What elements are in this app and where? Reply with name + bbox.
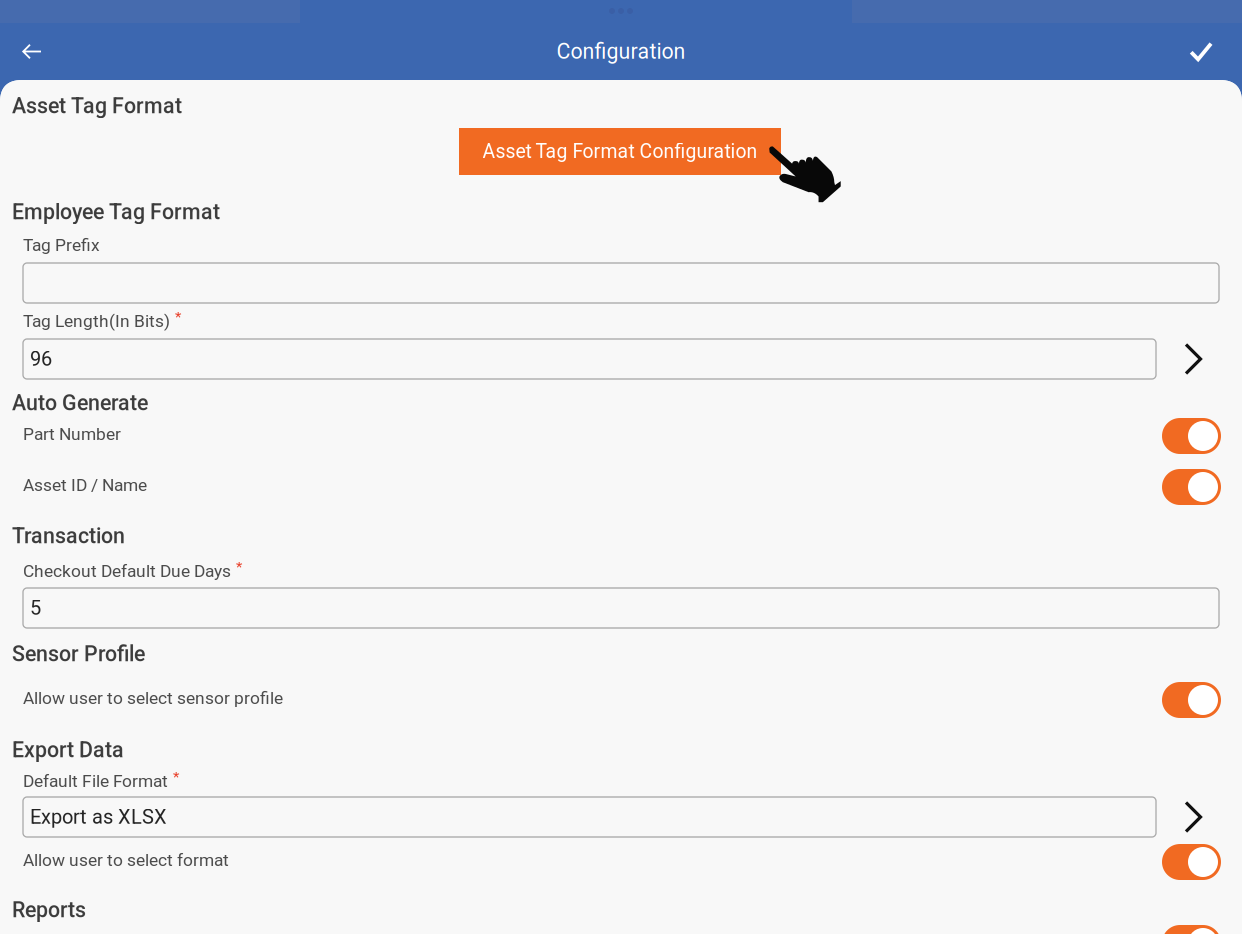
- staticText: Transaction: [12, 523, 125, 548]
- button[interactable]: Save: [1167, 23, 1242, 80]
- staticText: Auto Generate: [12, 390, 148, 415]
- staticText: 96: [30, 347, 52, 371]
- staticText: Export as XLSX: [30, 805, 167, 829]
- staticText: Asset Tag Format Configuration: [482, 140, 757, 163]
- staticText: Asset Tag Format: [12, 93, 182, 118]
- button[interactable]: Choose value: [1156, 339, 1212, 379]
- staticText: Asset ID / Name: [23, 475, 147, 495]
- staticText: Part Number: [23, 424, 121, 444]
- button[interactable]: Part Number: [0, 418, 1242, 454]
- staticText: Default File Format: [23, 771, 168, 791]
- staticText: Sensor Profile: [12, 641, 145, 666]
- button[interactable]: Back: [0, 23, 64, 80]
- button[interactable]: Allow user to select sensor profile: [0, 682, 1242, 718]
- staticText: Employee Tag Format: [12, 199, 220, 224]
- staticText: *: [236, 559, 242, 576]
- staticText: Export Data: [12, 737, 124, 762]
- staticText: Tag Length(In Bits): [23, 311, 170, 331]
- button[interactable]: Asset ID / Name: [0, 469, 1242, 505]
- staticText: Configuration: [556, 39, 685, 64]
- staticText: Allow user to select sensor profile: [23, 688, 283, 708]
- staticText: Tag Prefix: [23, 235, 100, 255]
- button[interactable]: Asset Tag Format Configuration: [459, 128, 781, 175]
- staticText: Allow user to select format: [23, 850, 229, 870]
- staticText: Reports: [12, 897, 86, 922]
- button[interactable]: Allow user to select report: [0, 925, 1242, 934]
- staticText: 5: [30, 596, 41, 620]
- button[interactable]: Choose value: [1156, 797, 1212, 837]
- button[interactable]: Allow user to select format: [0, 844, 1242, 880]
- staticText: *: [175, 309, 181, 326]
- staticText: *: [173, 769, 179, 786]
- staticText: Checkout Default Due Days: [23, 561, 231, 581]
